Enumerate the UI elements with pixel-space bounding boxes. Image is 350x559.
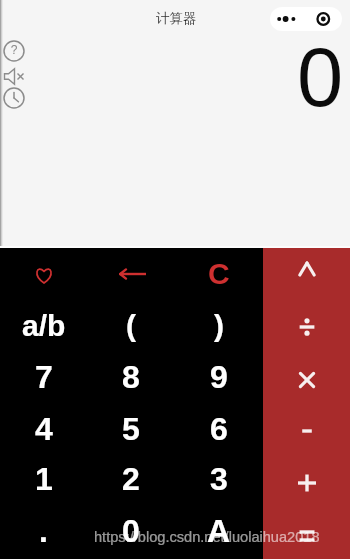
staticText: . [39, 513, 48, 549]
staticText: ) [214, 309, 224, 343]
staticText: ? [3, 43, 25, 62]
button[interactable]: Menu and close [270, 7, 342, 31]
button[interactable]: History [3, 87, 25, 109]
staticText: 1 [35, 461, 53, 497]
staticText: a/b [22, 309, 66, 343]
staticText: ( [126, 309, 136, 343]
staticText: 0 [122, 513, 140, 549]
button[interactable]: C [175, 248, 263, 299]
staticText: 0 [297, 31, 344, 124]
staticText: 3 [210, 461, 228, 497]
button[interactable]: 3 [175, 455, 263, 507]
staticText: A [207, 513, 231, 549]
button[interactable]: 0 [87, 507, 175, 559]
staticText: https://blog.csdn.net/luolaihua2018 [94, 529, 320, 545]
button[interactable]: A [175, 507, 263, 559]
staticText: 9 [210, 359, 228, 395]
button[interactable]: Help [3, 40, 25, 62]
button[interactable]: 2 [87, 455, 175, 507]
button[interactable]: Equals [263, 507, 350, 559]
button[interactable]: ) [175, 299, 263, 351]
button[interactable]: Minus [263, 403, 350, 455]
button[interactable]: ( [87, 299, 175, 351]
staticText: 8 [122, 359, 140, 395]
button[interactable]: Favourites [0, 248, 87, 299]
button[interactable]: 5 [87, 403, 175, 455]
button[interactable]: 1 [0, 455, 87, 507]
button[interactable]: Sound off [3, 67, 26, 86]
button[interactable]: Backspace [87, 248, 175, 299]
staticText: 4 [35, 411, 53, 447]
button[interactable]: . [0, 507, 87, 559]
button[interactable]: 4 [0, 403, 87, 455]
staticText: 2 [122, 461, 140, 497]
button[interactable]: Plus [263, 455, 350, 507]
button[interactable]: Divide [263, 299, 350, 351]
staticText: 7 [35, 359, 53, 395]
button[interactable]: 7 [0, 351, 87, 403]
staticText: C [208, 257, 230, 291]
button[interactable]: 9 [175, 351, 263, 403]
button[interactable]: 8 [87, 351, 175, 403]
staticText: 6 [210, 411, 228, 447]
staticText: 5 [122, 411, 140, 447]
button[interactable]: a/b [0, 299, 87, 351]
staticText: 计算器 [156, 10, 197, 27]
button[interactable]: Multiply [263, 351, 350, 403]
button[interactable]: 6 [175, 403, 263, 455]
button[interactable]: Power [263, 248, 350, 299]
